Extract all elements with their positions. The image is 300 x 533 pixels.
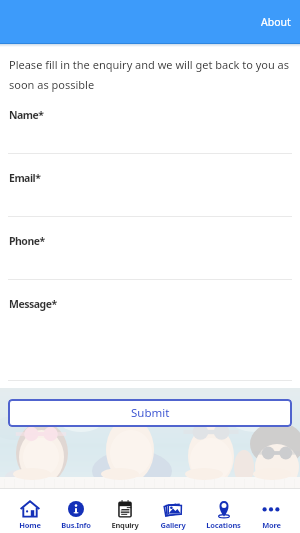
staticText: More — [262, 520, 281, 530]
staticText: Submit — [131, 405, 170, 421]
button[interactable]: Submit — [8, 399, 292, 427]
staticText: Email* — [9, 171, 41, 185]
button[interactable]: Bus.Info — [60, 499, 92, 530]
staticText: Gallery — [160, 520, 186, 530]
button[interactable]: Enquiry — [110, 499, 140, 530]
button[interactable]: About — [247, 7, 300, 37]
staticText: Home — [19, 520, 41, 530]
staticText: Bus.Info — [61, 520, 91, 530]
staticText: Please fill in the enquiry and we will g… — [9, 57, 294, 92]
staticText: Name* — [9, 108, 44, 122]
button[interactable]: More — [260, 499, 282, 530]
button[interactable]: Home — [18, 499, 42, 530]
button[interactable]: Locations — [205, 499, 242, 530]
staticText: About — [261, 15, 291, 29]
staticText: Phone* — [9, 234, 45, 248]
button[interactable]: Gallery — [159, 499, 187, 530]
staticText: Message* — [9, 297, 57, 311]
staticText: Enquiry — [111, 520, 139, 530]
staticText: Locations — [206, 520, 241, 530]
